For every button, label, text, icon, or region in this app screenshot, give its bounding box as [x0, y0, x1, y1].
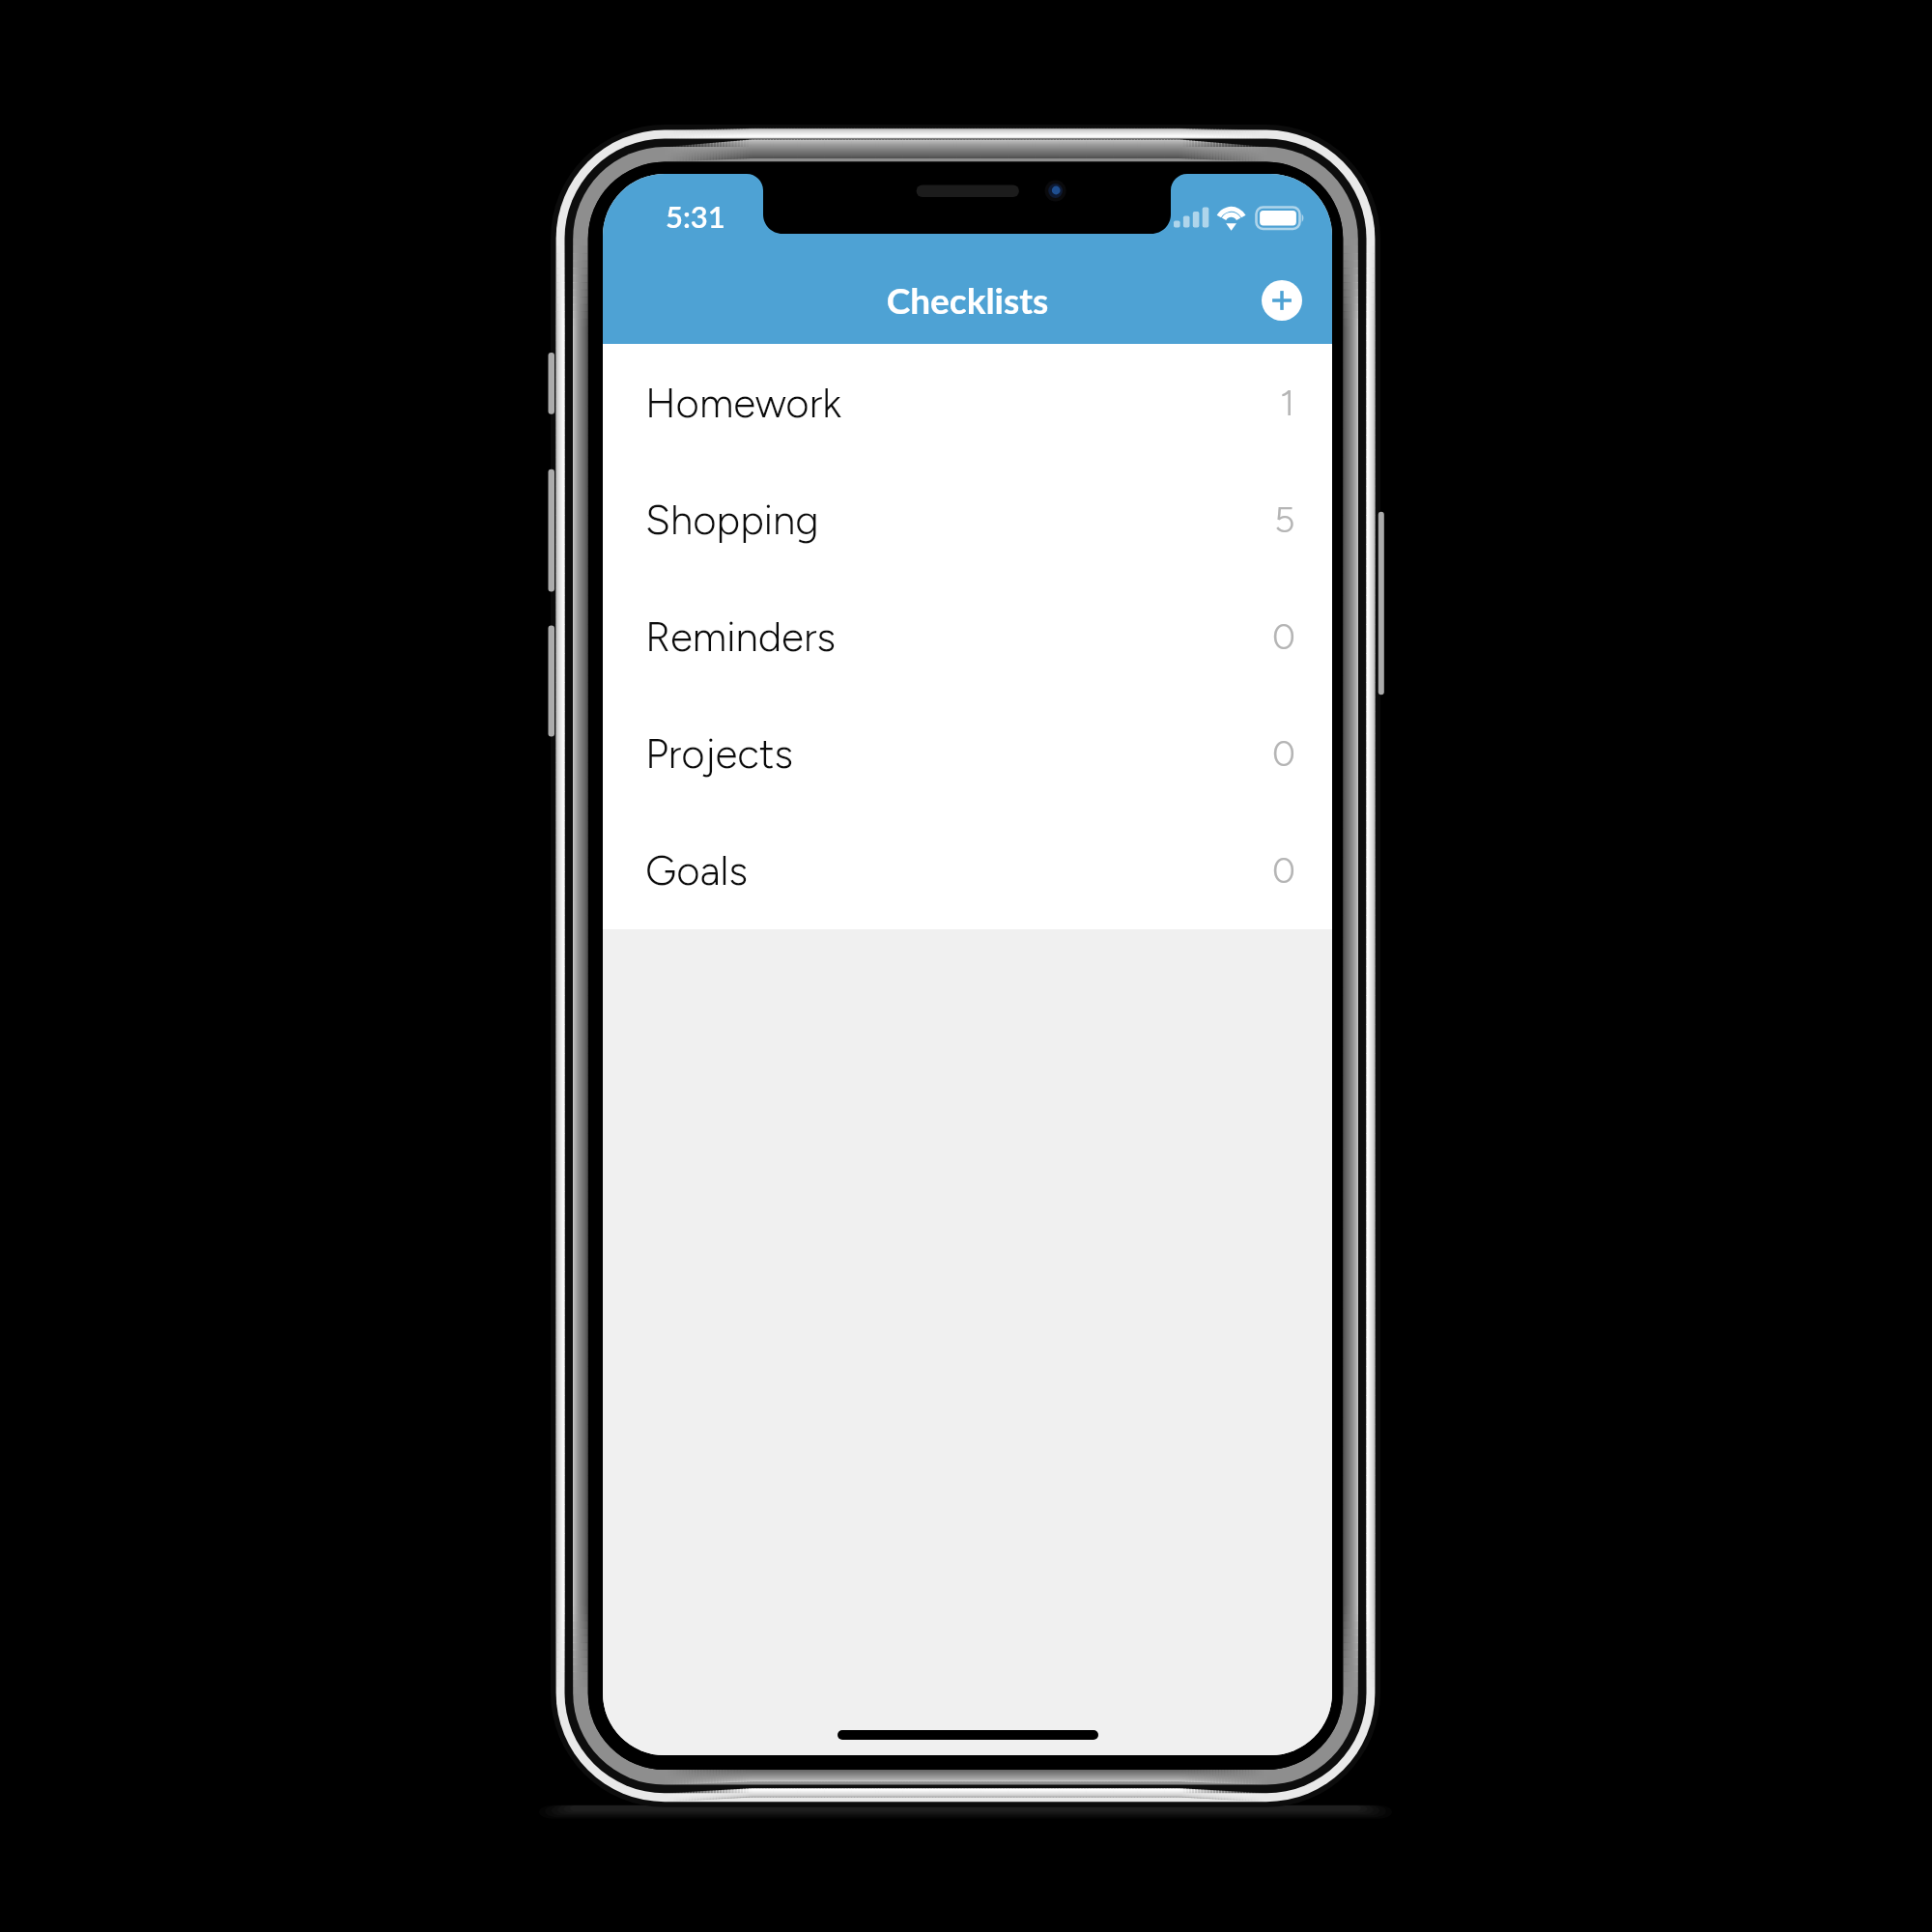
staticText: Projects — [645, 729, 793, 778]
staticText: 0 — [1272, 614, 1295, 658]
staticText: 5:31 — [666, 198, 725, 234]
button[interactable]: Shopping — [603, 461, 1332, 578]
button[interactable]: Add checklist — [1262, 280, 1302, 321]
staticText: Homework — [645, 379, 841, 427]
button[interactable]: Reminders — [603, 578, 1332, 695]
staticText: 5 — [1274, 497, 1295, 541]
staticText: Checklists — [603, 278, 1332, 321]
button[interactable]: Projects — [603, 695, 1332, 811]
staticText: Reminders — [645, 612, 837, 661]
button[interactable]: Goals — [603, 811, 1332, 928]
staticText: 0 — [1272, 848, 1295, 892]
button[interactable]: Homework — [603, 344, 1332, 461]
staticText: 0 — [1272, 731, 1295, 775]
staticText: Shopping — [645, 496, 819, 544]
staticText: 1 — [1280, 381, 1295, 424]
staticText: Goals — [645, 846, 748, 895]
